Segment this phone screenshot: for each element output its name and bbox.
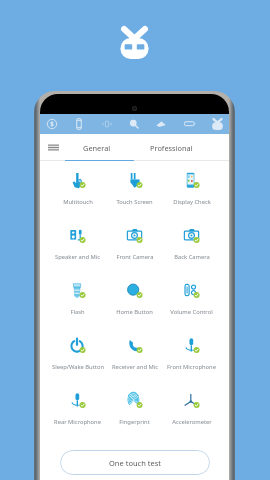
button[interactable]: Fingerprint xyxy=(106,381,163,436)
button[interactable]: Back Camera xyxy=(163,216,220,271)
button[interactable]: Multitouch xyxy=(49,161,106,216)
staticText: Back Camera xyxy=(174,253,210,261)
staticText: Display Check xyxy=(173,198,211,206)
button[interactable]: Flash xyxy=(49,271,106,326)
staticText: Home Button xyxy=(116,308,153,316)
staticText: General xyxy=(83,143,111,153)
staticText: Accelerometer xyxy=(172,418,212,426)
button[interactable]: Front Microphone xyxy=(163,326,220,381)
button[interactable]: Receiver and Mic xyxy=(106,326,163,381)
staticText: One touch test xyxy=(109,458,161,468)
staticText: Speaker and Mic xyxy=(55,253,100,261)
staticText: Receiver and Mic xyxy=(112,363,158,371)
staticText: Volume Control xyxy=(170,308,213,316)
staticText: Sleep/Wake Button xyxy=(52,363,104,371)
staticText: Rear Microphone xyxy=(54,418,101,426)
button[interactable]: Accelerometer xyxy=(163,381,220,436)
staticText: Fingerprint xyxy=(119,418,150,426)
button[interactable]: One touch test xyxy=(60,450,210,475)
button[interactable]: Menu xyxy=(40,134,66,161)
button[interactable]: Sleep/Wake Button xyxy=(49,326,106,381)
button[interactable]: Volume Control xyxy=(163,271,220,326)
staticText: Front Camera xyxy=(116,253,154,261)
button[interactable]: General xyxy=(66,134,127,161)
staticText: Professional xyxy=(150,143,193,153)
button[interactable]: Front Camera xyxy=(106,216,163,271)
staticText: Multitouch xyxy=(63,198,93,206)
staticText: Flash xyxy=(70,308,85,316)
staticText: Front Microphone xyxy=(167,363,216,371)
button[interactable]: Speaker and Mic xyxy=(49,216,106,271)
button[interactable]: Rear Microphone xyxy=(49,381,106,436)
staticText: Touch Screen xyxy=(116,198,153,206)
button[interactable]: Touch Screen xyxy=(106,161,163,216)
button[interactable]: Display Check xyxy=(163,161,220,216)
button[interactable]: Home Button xyxy=(106,271,163,326)
button[interactable]: Professional xyxy=(127,134,215,161)
